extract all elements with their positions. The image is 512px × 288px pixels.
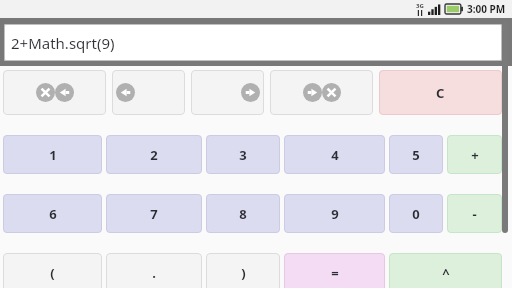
button[interactable]: Move left xyxy=(112,70,185,115)
button[interactable]: 3 xyxy=(206,135,280,174)
button[interactable]: + xyxy=(447,135,502,174)
button[interactable]: Delete right xyxy=(270,70,373,115)
staticText: 0 xyxy=(412,205,420,223)
button[interactable]: 2 xyxy=(106,135,202,174)
staticText: 9 xyxy=(331,205,339,223)
staticText: 3G xyxy=(416,2,424,10)
staticText: + xyxy=(471,146,479,164)
button[interactable]: 6 xyxy=(3,194,102,233)
button[interactable]: Move right xyxy=(191,70,264,115)
staticText: = xyxy=(331,264,339,282)
staticText: ( xyxy=(50,264,55,282)
button[interactable]: ^ xyxy=(389,253,502,288)
button[interactable]: 7 xyxy=(106,194,202,233)
staticText: 6 xyxy=(49,205,57,223)
staticText: 8 xyxy=(239,205,247,223)
button[interactable]: 9 xyxy=(284,194,385,233)
button[interactable]: 8 xyxy=(206,194,280,233)
button[interactable]: = xyxy=(284,253,385,288)
staticText: 3:00 PM xyxy=(467,2,506,16)
button[interactable]: - xyxy=(447,194,502,233)
button[interactable]: 5 xyxy=(389,135,443,174)
staticText: 3 xyxy=(239,146,247,164)
staticText: 5 xyxy=(412,146,420,164)
button[interactable]: Delete left xyxy=(3,70,106,115)
staticText: ) xyxy=(241,264,246,282)
button[interactable]: 2+Math.sqrt(9) xyxy=(4,24,502,61)
staticText: 1 xyxy=(49,146,57,164)
staticText: 2 xyxy=(150,146,158,164)
staticText: ^ xyxy=(442,264,450,282)
button[interactable]: 4 xyxy=(284,135,385,174)
staticText: 2+Math.sqrt(9) xyxy=(11,33,115,53)
staticText: . xyxy=(152,264,156,282)
button[interactable]: C xyxy=(379,70,502,115)
button[interactable]: ) xyxy=(206,253,280,288)
staticText: - xyxy=(472,205,477,223)
button[interactable]: 1 xyxy=(3,135,102,174)
button[interactable]: ( xyxy=(3,253,102,288)
button[interactable]: . xyxy=(106,253,202,288)
staticText: C xyxy=(436,84,445,102)
staticText: 7 xyxy=(150,205,158,223)
button[interactable]: 0 xyxy=(389,194,443,233)
staticText: 4 xyxy=(331,146,339,164)
